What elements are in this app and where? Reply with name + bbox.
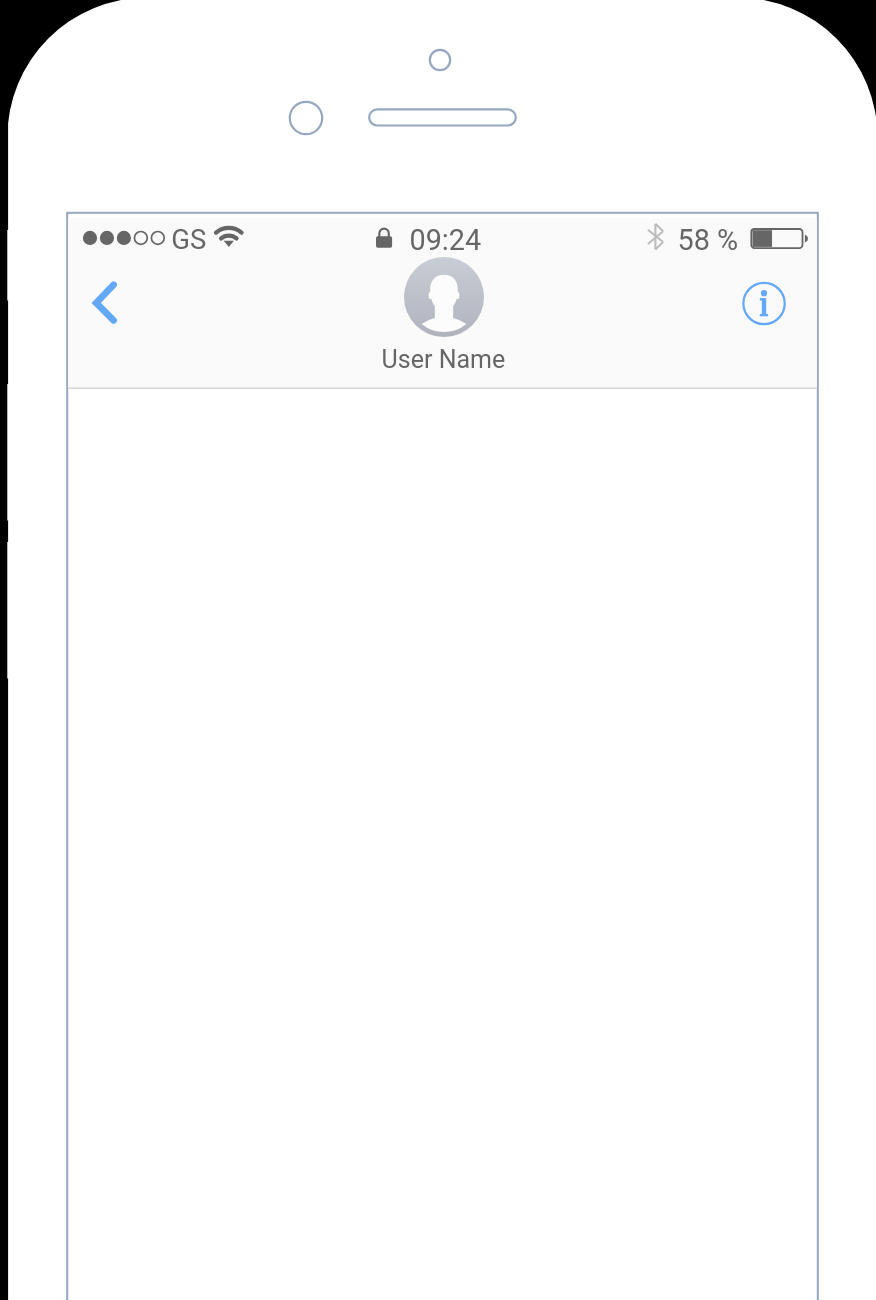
button[interactable]: Back [70, 264, 150, 344]
button[interactable] [360, 255, 528, 379]
button[interactable]: Info [724, 264, 804, 344]
